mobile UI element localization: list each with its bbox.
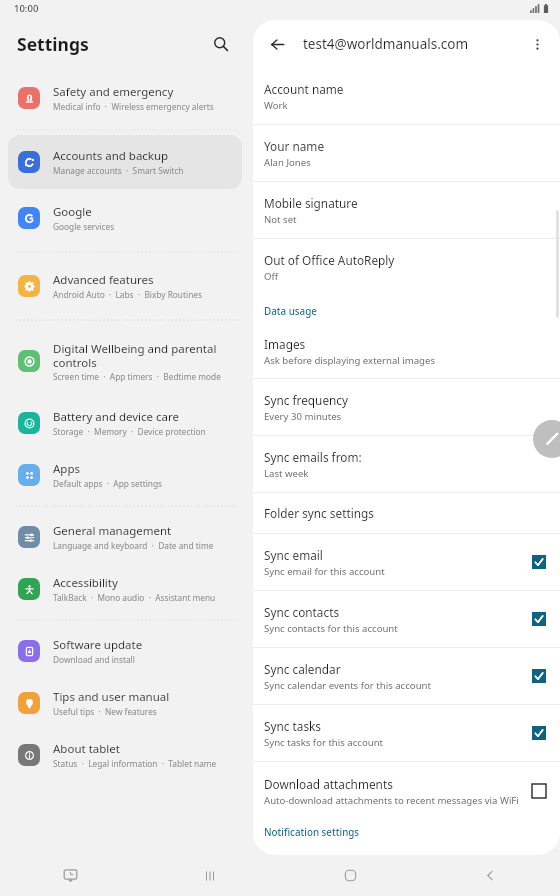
button[interactable]: Edit <box>533 420 560 458</box>
button[interactable]: Accounts and backup <box>8 135 242 189</box>
staticText: Download attachments <box>264 776 393 792</box>
staticText: Alan Jones <box>264 156 311 169</box>
button[interactable]: Images <box>253 322 560 378</box>
button[interactable]: Account name <box>253 68 560 124</box>
button[interactable]: Sync frequency <box>253 379 560 435</box>
button[interactable]: Home <box>280 855 420 896</box>
staticText: Accessibility <box>53 575 118 591</box>
staticText: Manage accounts · Smart Switch <box>53 165 184 176</box>
staticText: Not set <box>264 213 297 226</box>
staticText: Useful tips · New features <box>53 706 157 717</box>
staticText: Language and keyboard · Date and time <box>53 540 214 551</box>
staticText: Ask before displaying external images <box>264 354 435 367</box>
staticText: Last week <box>264 467 309 480</box>
staticText: Work <box>264 99 288 112</box>
staticText: Every 30 minutes <box>264 410 342 423</box>
staticText: General management <box>53 523 172 539</box>
staticText: Tips and user manual <box>53 689 170 705</box>
staticText: Folder sync settings <box>264 505 374 521</box>
staticText: Images <box>264 336 306 352</box>
staticText: Out of Office AutoReply <box>264 252 395 268</box>
staticText: Software update <box>53 637 143 653</box>
staticText: Battery and device care <box>53 409 180 425</box>
staticText: Sync contacts for this account <box>264 622 398 635</box>
staticText: Sync email <box>264 547 323 563</box>
button[interactable]: Software update <box>8 625 242 677</box>
button[interactable]: Digital Wellbeing and parental controls <box>8 325 242 397</box>
staticText: TalkBack · Mono audio · Assistant menu <box>53 592 216 603</box>
staticText: Safety and emergency <box>53 84 174 100</box>
button[interactable]: Out of Office AutoReply <box>253 239 560 295</box>
button[interactable]: Mobile signature <box>253 182 560 238</box>
staticText: Sync calendar events for this account <box>264 679 431 692</box>
staticText: Sync email for this account <box>264 565 385 578</box>
staticText: Sync calendar <box>264 661 341 677</box>
button[interactable]: Recents <box>140 855 280 896</box>
staticText: Digital Wellbeing and parental controls <box>53 341 236 370</box>
button[interactable]: Google <box>8 189 242 247</box>
button[interactable]: Search <box>206 29 236 59</box>
staticText: Sync frequency <box>264 392 349 408</box>
button[interactable]: Your name <box>253 125 560 181</box>
button[interactable]: Battery and device care <box>8 397 242 449</box>
button[interactable]: Sync emails from: <box>253 436 560 492</box>
staticText: Storage · Memory · Device protection <box>53 426 206 437</box>
button[interactable]: Advanced features <box>8 257 242 315</box>
staticText: test4@worldmanuals.com <box>303 35 469 53</box>
staticText: Default apps · App settings <box>53 478 163 489</box>
staticText: Advanced features <box>53 272 154 288</box>
button[interactable]: Tips and user manual <box>8 677 242 729</box>
button[interactable]: Back <box>420 855 560 896</box>
staticText: Sync contacts <box>264 604 340 620</box>
staticText: Accounts and backup <box>53 148 169 164</box>
button[interactable]: Notification settings <box>264 826 360 839</box>
staticText: Screen time · App timers · Bedtime mode <box>53 371 221 382</box>
staticText: 10:00 <box>14 2 39 15</box>
button[interactable]: Sync email <box>253 534 560 590</box>
button[interactable]: Back <box>263 30 291 58</box>
button[interactable]: About tablet <box>8 729 242 781</box>
button[interactable]: Sync contacts <box>253 591 560 647</box>
button[interactable]: Download attachments <box>253 762 560 820</box>
staticText: Google services <box>53 221 115 232</box>
button[interactable]: Data usage <box>264 305 317 318</box>
staticText: Sync tasks for this account <box>264 736 384 749</box>
button[interactable]: Apps <box>8 449 242 501</box>
staticText: Medical info · Wireless emergency alerts <box>53 101 214 112</box>
button[interactable]: Sync calendar <box>253 648 560 704</box>
button[interactable]: Sync tasks <box>253 705 560 761</box>
staticText: Sync tasks <box>264 718 321 734</box>
staticText: Download and install <box>53 654 135 665</box>
button[interactable]: More options <box>524 31 550 57</box>
staticText: Mobile signature <box>264 195 358 211</box>
staticText: Auto-download attachments to recent mess… <box>264 794 519 807</box>
staticText: Status · Legal information · Tablet name <box>53 758 217 769</box>
button[interactable]: Accessibility <box>8 563 242 615</box>
button[interactable]: Folder sync settings <box>253 493 560 533</box>
button[interactable]: Screenshot <box>0 855 140 896</box>
staticText: Account name <box>264 81 344 97</box>
staticText: Google <box>53 204 92 220</box>
button[interactable]: General management <box>8 511 242 563</box>
staticText: Off <box>264 270 279 283</box>
staticText: About tablet <box>53 741 120 757</box>
button[interactable]: Safety and emergency <box>8 71 242 125</box>
staticText: Your name <box>264 138 325 154</box>
staticText: Sync emails from: <box>264 449 362 465</box>
staticText: Settings <box>17 32 89 56</box>
staticText: Android Auto · Labs · Bixby Routines <box>53 289 202 300</box>
staticText: Apps <box>53 461 81 477</box>
